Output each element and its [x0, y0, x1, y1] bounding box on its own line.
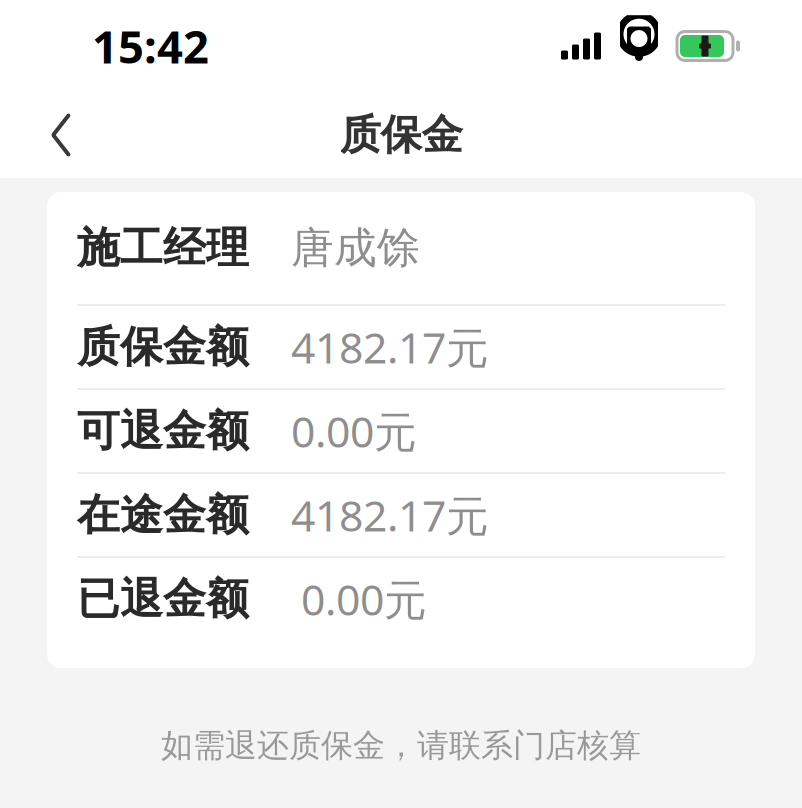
staticText: 质保金额	[77, 321, 249, 373]
staticText: 15:42	[92, 16, 209, 76]
staticText: 0.00元	[301, 571, 427, 627]
staticText: 4182.17元	[291, 319, 489, 375]
staticText: 如需退还质保金，请联系门店核算	[161, 726, 641, 765]
staticText: 质保金	[339, 110, 462, 160]
staticText: 4182.17元	[291, 487, 489, 543]
staticText: 可退金额	[77, 405, 249, 457]
staticText: 已退金额	[77, 573, 249, 625]
staticText: 施工经理	[77, 222, 249, 274]
staticText: 在途金额	[77, 489, 249, 541]
staticText: 唐成馀	[291, 222, 420, 274]
button[interactable]: 返回	[26, 92, 96, 178]
staticText: 0.00元	[291, 403, 417, 459]
